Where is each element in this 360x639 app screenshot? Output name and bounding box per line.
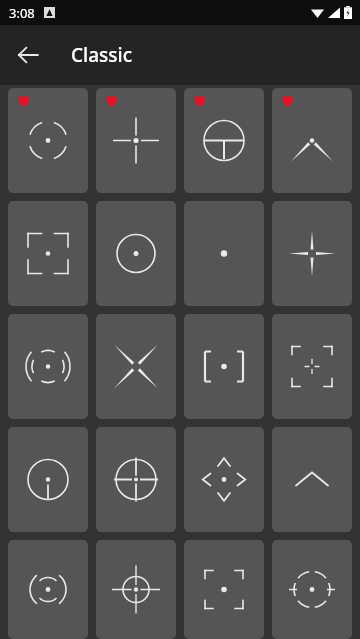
button[interactable]: Reticle CircleCrosshairSmall	[96, 540, 176, 639]
button[interactable]: Reticle CircleT	[184, 88, 264, 193]
button[interactable]: Reticle BracketsDot	[184, 314, 264, 419]
button[interactable]: Reticle CircleDot	[96, 201, 176, 306]
button[interactable]: Reticle ThinCrossDot	[96, 88, 176, 193]
button[interactable]: Reticle SquareCornersDot	[184, 540, 264, 639]
staticText: Classic	[71, 42, 132, 68]
button[interactable]: Reticle CornerBracketsDot	[8, 201, 88, 306]
button[interactable]: Reticle CaretUp	[272, 427, 352, 532]
button[interactable]: Back	[7, 34, 49, 76]
button[interactable]: Reticle XPlain	[96, 314, 176, 419]
button[interactable]: Reticle DashedRingDot	[8, 88, 88, 193]
button[interactable]: Reticle ParenDot	[8, 540, 88, 639]
staticText: 3:08	[9, 4, 35, 22]
button[interactable]: Reticle CircleCrosshair	[96, 427, 176, 532]
button[interactable]: Reticle DiamondChevrons	[184, 427, 264, 532]
button[interactable]: Reticle SquareCornersCross	[272, 314, 352, 419]
button[interactable]: Reticle CircleDotStem	[8, 427, 88, 532]
button[interactable]: Reticle ThinCrossTaper	[272, 201, 352, 306]
button[interactable]: Reticle XTapered	[272, 88, 352, 193]
button[interactable]: Reticle DotOnly	[184, 201, 264, 306]
button[interactable]: Reticle CircleDashRing	[272, 540, 352, 639]
button[interactable]: Reticle DashedRingDot2	[8, 314, 88, 419]
